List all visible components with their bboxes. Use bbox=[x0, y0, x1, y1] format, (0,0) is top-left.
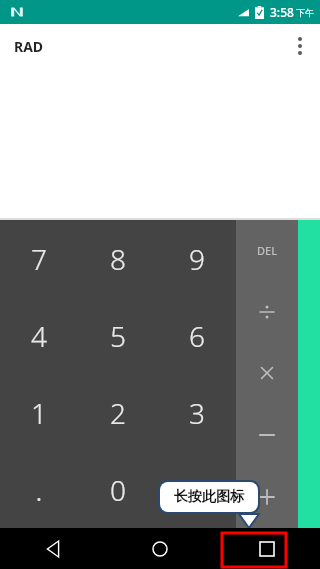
staticText: 8 bbox=[110, 240, 126, 278]
staticText: 2 bbox=[110, 394, 126, 432]
button[interactable]: 4 bbox=[0, 297, 78, 374]
staticText: 7 bbox=[31, 240, 47, 278]
button[interactable]: 6 bbox=[157, 297, 236, 374]
staticText: 1 bbox=[31, 394, 47, 432]
button[interactable]: Divide bbox=[236, 281, 298, 342]
button[interactable]: RAD bbox=[8, 33, 50, 60]
button[interactable]: 8 bbox=[78, 220, 157, 297]
staticText: 6 bbox=[189, 317, 205, 355]
button[interactable]: Minus bbox=[236, 404, 298, 466]
button[interactable]: . bbox=[0, 451, 78, 528]
button[interactable]: 5 bbox=[78, 297, 157, 374]
staticText: = bbox=[189, 471, 205, 509]
staticText: DEL bbox=[257, 243, 278, 258]
button[interactable]: Plus bbox=[236, 466, 298, 528]
button[interactable]: 长按此图标 bbox=[160, 482, 258, 512]
staticText: 3 bbox=[189, 394, 205, 432]
button[interactable]: More options bbox=[280, 26, 320, 66]
button[interactable]: = bbox=[157, 451, 236, 528]
staticText: 下午 bbox=[296, 7, 314, 18]
button[interactable]: Recents bbox=[239, 528, 295, 569]
staticText: . bbox=[35, 469, 43, 510]
staticText: 5 bbox=[110, 317, 126, 355]
button[interactable]: 2 bbox=[78, 374, 157, 451]
staticText: 0 bbox=[110, 471, 126, 509]
button[interactable]: 9 bbox=[157, 220, 236, 297]
staticText: RAD bbox=[14, 37, 44, 56]
button[interactable]: DEL bbox=[236, 220, 298, 281]
button[interactable]: Back bbox=[25, 528, 81, 569]
staticText: 9 bbox=[189, 240, 205, 278]
staticText: 3:58 bbox=[270, 4, 294, 20]
button[interactable]: Multiply bbox=[236, 342, 298, 404]
button[interactable]: 3 bbox=[157, 374, 236, 451]
button[interactable]: 7 bbox=[0, 220, 78, 297]
staticText: 4 bbox=[31, 317, 47, 355]
button[interactable]: 1 bbox=[0, 374, 78, 451]
staticText: 长按此图标 bbox=[174, 488, 244, 506]
button[interactable]: Home bbox=[132, 528, 188, 569]
button[interactable]: 0 bbox=[78, 451, 157, 528]
